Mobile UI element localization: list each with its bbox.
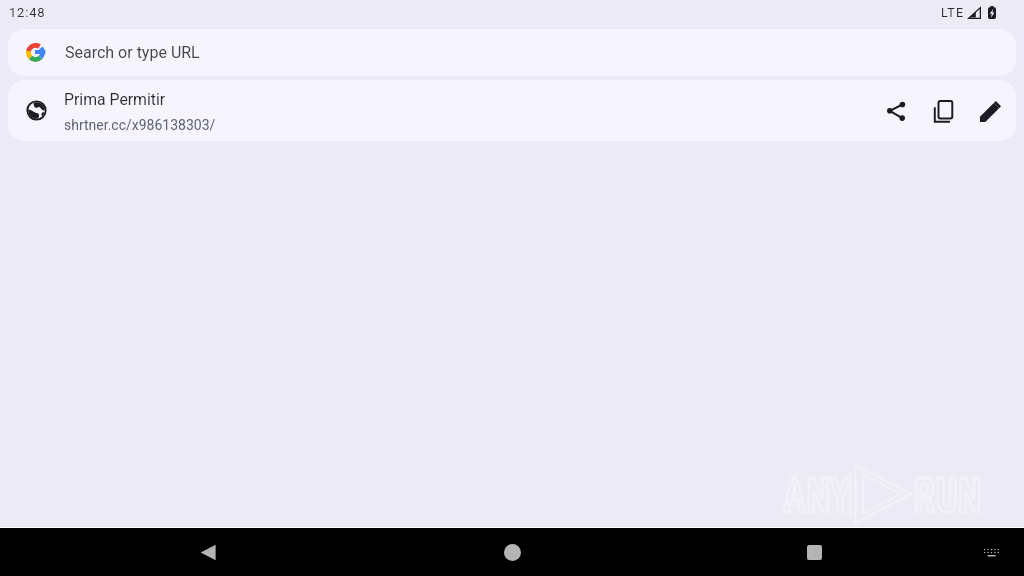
staticText: 12:48 (9, 5, 46, 20)
button[interactable]: Keyboard (967, 528, 1015, 576)
button[interactable]: Search or type URL (8, 29, 1016, 76)
button[interactable]: Edit (971, 91, 1011, 131)
button[interactable]: Recent apps (790, 528, 838, 576)
staticText: LTE (941, 5, 965, 20)
button[interactable]: Copy link (923, 91, 963, 131)
staticText: Search or type URL (65, 43, 200, 62)
staticText: Prima Permitir (64, 90, 166, 109)
button[interactable]: Back (184, 528, 232, 576)
button[interactable]: Prima Permitir (8, 80, 1016, 141)
staticText: shrtner.cc/x986138303/ (64, 117, 216, 133)
button[interactable]: Home (488, 528, 536, 576)
button[interactable]: Share (876, 91, 916, 131)
